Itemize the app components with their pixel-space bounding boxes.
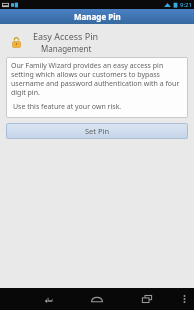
staticText: Our Family Wizard provides an easy acces… xyxy=(11,61,183,97)
button[interactable]: Recent apps xyxy=(129,288,165,310)
staticText: 9:21 xyxy=(180,1,192,9)
button[interactable]: Back xyxy=(29,288,65,310)
button[interactable]: Set Pin xyxy=(6,123,188,139)
button[interactable]: Home xyxy=(79,288,115,310)
staticText: Use this feature at your own risk. xyxy=(13,102,122,112)
staticText: Manage Pin xyxy=(74,11,121,22)
staticText: Easy Access Pin xyxy=(33,30,99,42)
button[interactable]: More options xyxy=(174,288,194,310)
staticText: Management xyxy=(41,43,92,54)
staticText: Set Pin xyxy=(85,126,110,136)
